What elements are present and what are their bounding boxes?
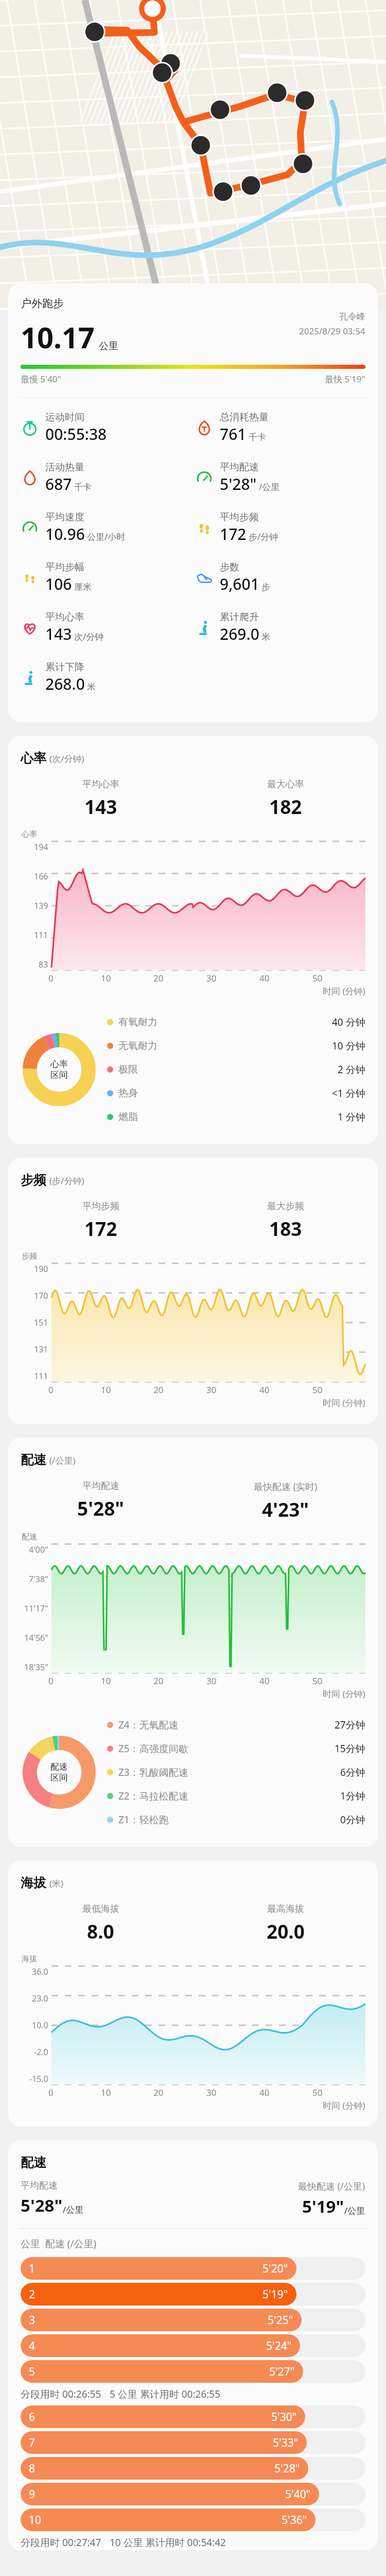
staticText: 步频 (22, 1251, 37, 1261)
staticText: 2 (29, 2287, 36, 2302)
button[interactable]: 6 (21, 2405, 365, 2428)
staticText: 190 (34, 1263, 48, 1275)
staticText: 分段用时 00:26:55 (21, 2387, 101, 2401)
staticText: 761 (220, 423, 247, 445)
button[interactable]: 平均步频 (193, 511, 367, 545)
staticText: 30 (206, 1384, 217, 1396)
other: 平均速度 (19, 517, 41, 539)
staticText: 50 (312, 2087, 323, 2098)
button[interactable]: 热身 (107, 1081, 365, 1105)
other: 累计下降 (19, 667, 41, 689)
staticText: 10 (29, 2513, 42, 2528)
other: 平均心率 (19, 617, 41, 639)
staticText: 配速 (50, 1761, 68, 1772)
staticText: 131 (34, 1344, 48, 1355)
button[interactable]: 1 (21, 2257, 365, 2280)
staticText: 8.0 (87, 1918, 114, 1944)
staticText: 50 (312, 1384, 323, 1396)
staticText: 106 (45, 573, 72, 595)
staticText: 36.0 (32, 1966, 48, 1977)
staticText: 时间 (分钟) (323, 1688, 365, 1700)
button[interactable]: 7 (21, 2431, 365, 2454)
staticText: 5'28" (77, 1495, 125, 1521)
staticText: 最慢 5'40" (21, 373, 61, 385)
button[interactable]: 累计爬升 (193, 611, 367, 645)
button[interactable]: Z1：轻松跑 (107, 1808, 365, 1832)
staticText: 4'23" (262, 1496, 309, 1522)
button[interactable]: 运动时间 (19, 411, 193, 445)
staticText: 千卡 (249, 432, 266, 443)
staticText: 111 (34, 929, 48, 941)
staticText: -2.0 (34, 2046, 48, 2058)
button[interactable]: 平均心率 (19, 611, 193, 645)
button[interactable]: 4 (21, 2334, 365, 2357)
staticText: 时间 (分钟) (323, 2099, 365, 2111)
staticText: 热身 (118, 1087, 138, 1099)
button[interactable]: 燃脂 (107, 1105, 365, 1129)
staticText: 平均步频 (220, 511, 259, 523)
staticText: 极限 (118, 1063, 138, 1076)
button[interactable]: 有氧耐力 (107, 1010, 365, 1034)
button[interactable]: Z3：乳酸阈配速 (107, 1760, 365, 1784)
staticText: 5'28" (21, 2194, 63, 2217)
staticText: 10.96 (45, 523, 85, 545)
button[interactable]: 步数 (193, 561, 367, 595)
staticText: 最快 5'19" (325, 373, 365, 385)
button[interactable]: 极限 (107, 1058, 365, 1081)
button[interactable]: 活动热量 (19, 461, 193, 495)
staticText: (步/分钟) (49, 1175, 84, 1187)
button[interactable]: 平均配速 (193, 461, 367, 495)
staticText: 143 (84, 793, 117, 819)
staticText: 7'38" (29, 1573, 48, 1585)
other: 活动热量 (19, 467, 41, 489)
staticText: 总消耗热量 (220, 411, 269, 423)
staticText: 40 (259, 1675, 270, 1687)
staticText: 687 (45, 473, 72, 495)
staticText: 0 (48, 1675, 54, 1687)
staticText: Z4：无氧配速 (118, 1718, 179, 1732)
staticText: 孔令峰 (339, 311, 365, 322)
other: 运动时间 (19, 417, 41, 439)
staticText: 心率 (22, 829, 37, 839)
staticText: 厘米 (74, 582, 92, 592)
staticText: 166 (34, 871, 48, 882)
staticText: 172 (84, 1215, 117, 1241)
button[interactable]: Z4：无氧配速 (107, 1713, 365, 1737)
staticText: 11'17" (24, 1603, 48, 1614)
staticText: 9 (29, 2487, 36, 2502)
staticText: 5'33" (273, 2435, 299, 2450)
button[interactable]: Z2：马拉松配速 (107, 1784, 365, 1808)
button[interactable]: 无氧耐力 (107, 1034, 365, 1058)
staticText: 10 (101, 1384, 111, 1396)
button[interactable]: 2 (21, 2283, 365, 2306)
other: 步数 (193, 567, 216, 589)
button[interactable]: 3 (21, 2309, 365, 2331)
staticText: /公里 (344, 2205, 365, 2216)
button[interactable]: Z5：高强度间歇 (107, 1737, 365, 1760)
staticText: 运动时间 (45, 411, 84, 423)
staticText: 151 (34, 1317, 48, 1328)
button[interactable]: 8 (21, 2457, 365, 2480)
button[interactable]: 10 (21, 2509, 365, 2531)
staticText: 公里/小时 (87, 531, 126, 543)
button[interactable]: 5 (21, 2360, 365, 2383)
button[interactable]: 平均步幅 (19, 561, 193, 595)
staticText: 2025/8/29 03:54 (299, 325, 365, 337)
staticText: 5'36" (282, 2513, 307, 2528)
staticText: 步 (261, 582, 270, 592)
staticText: 1 (29, 2261, 36, 2276)
staticText: 10 (101, 2087, 111, 2098)
button[interactable]: 平均速度 (19, 511, 193, 545)
staticText: 平均配速 (82, 1480, 119, 1492)
staticText: 配速 (21, 2155, 46, 2171)
button[interactable]: 总消耗热量 (193, 411, 367, 445)
staticText: 米 (87, 682, 96, 692)
button[interactable]: 累计下降 (19, 661, 193, 694)
staticText: 15分钟 (335, 1742, 365, 1755)
staticText: 平均步频 (82, 1200, 119, 1212)
staticText: 平均心率 (82, 778, 119, 790)
staticText: 20 (153, 972, 164, 984)
staticText: 10.0 (32, 2020, 48, 2031)
button[interactable]: 9 (21, 2483, 365, 2505)
other: 平均步频 (193, 517, 216, 539)
